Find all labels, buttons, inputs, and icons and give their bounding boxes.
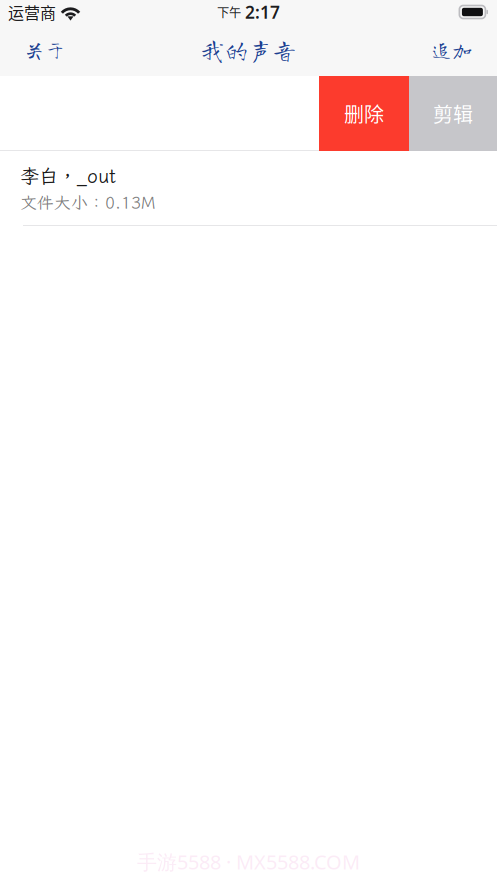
staticText: 删除: [344, 99, 384, 128]
button[interactable]: 删除: [319, 76, 409, 151]
staticText: 文件大小：0.13M: [20, 191, 155, 213]
staticText: 剪辑: [433, 99, 473, 128]
staticText: 我的声音: [200, 38, 296, 62]
staticText: 下午: [217, 3, 241, 21]
button[interactable]: 李白，_out: [0, 151, 497, 226]
staticText: 追加: [431, 40, 473, 60]
button[interactable]: 追加: [417, 24, 497, 76]
staticText: 李白，_out: [20, 163, 116, 188]
button[interactable]: 关于: [0, 24, 80, 76]
staticText: 关于: [24, 40, 66, 60]
button[interactable]: 剪辑: [409, 76, 497, 151]
staticText: 手游5588 · MX5588.COM: [137, 848, 360, 875]
staticText: 运营商: [8, 0, 56, 24]
staticText: 2:17: [245, 0, 280, 23]
